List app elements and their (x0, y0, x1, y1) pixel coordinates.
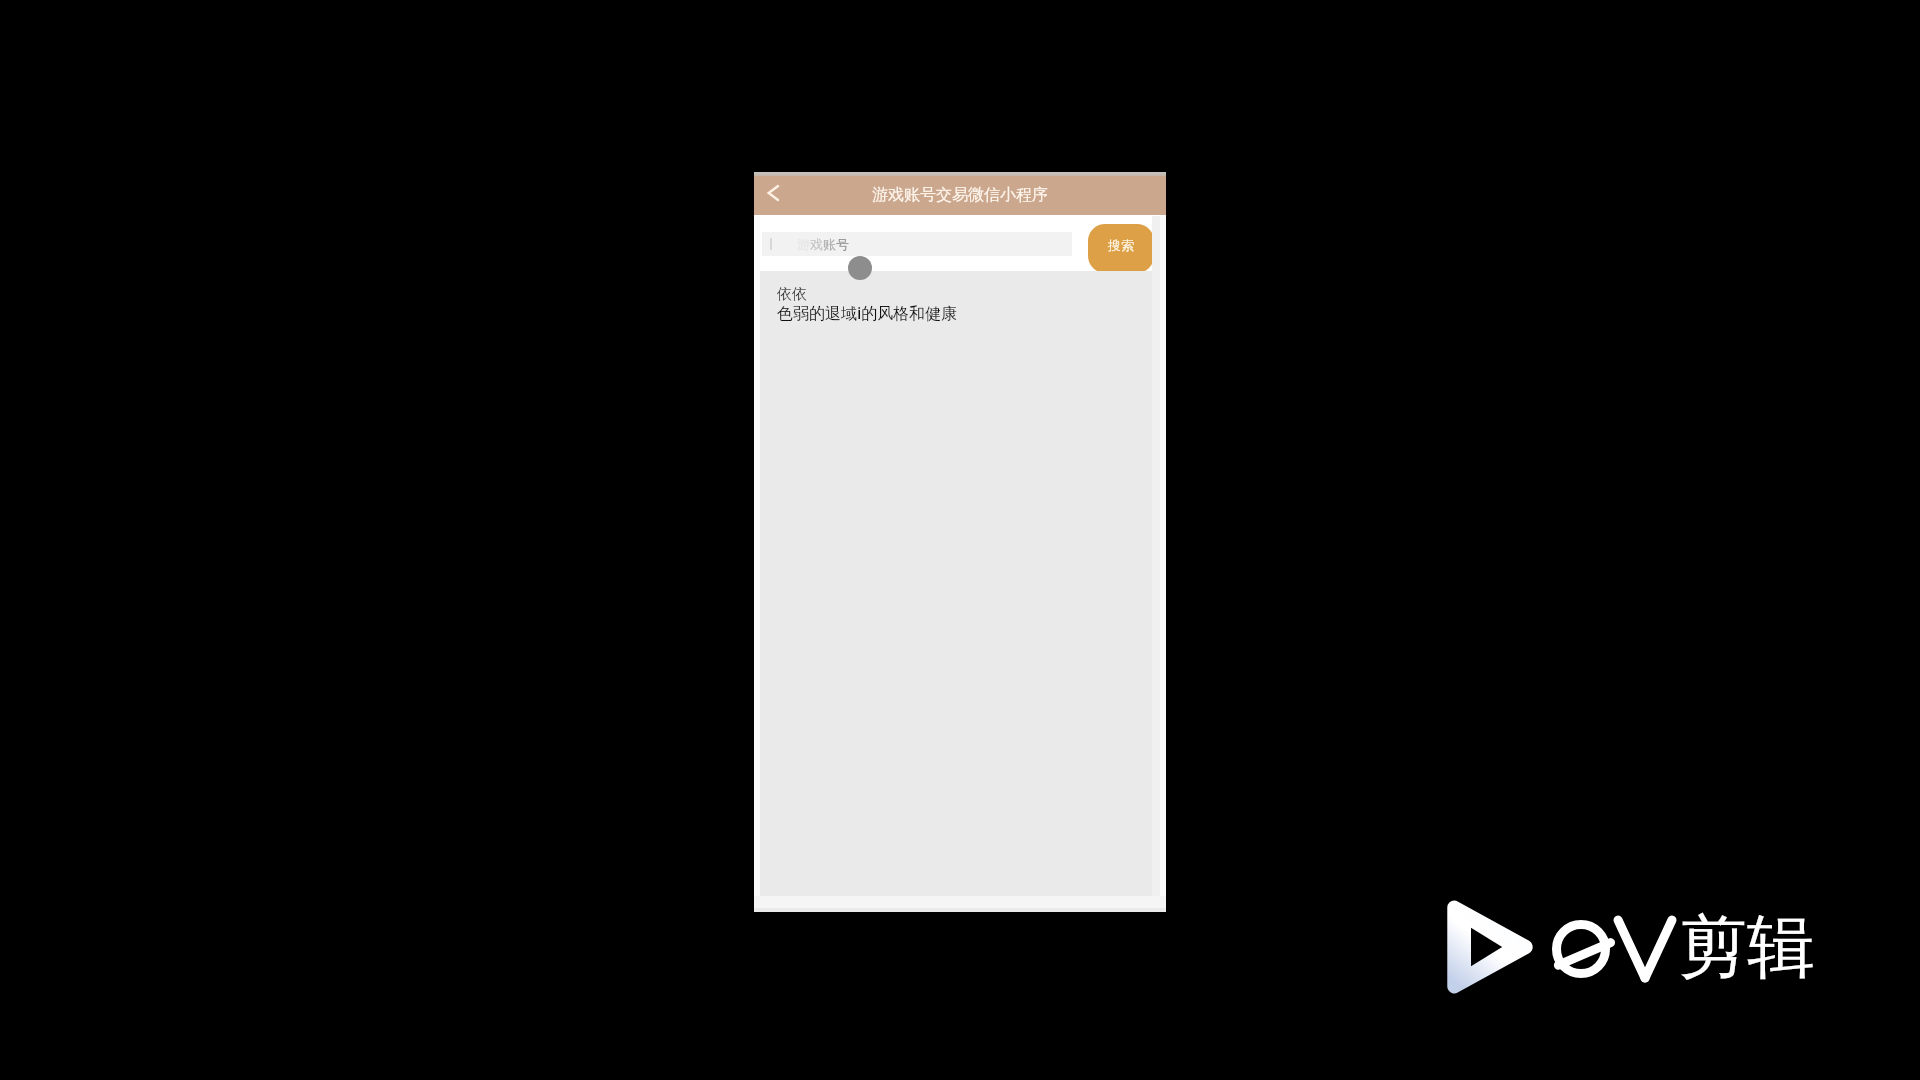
button[interactable]: 搜索 (1088, 224, 1154, 273)
staticText: 游 (797, 236, 810, 252)
staticText: 戏 (810, 236, 823, 252)
staticText: 依依 (777, 285, 807, 304)
button[interactable]: 依依 (754, 271, 1166, 323)
staticText: 色弱的退域i的风格和健康 (777, 302, 958, 324)
button[interactable]: Back (758, 178, 788, 208)
staticText: 剪辑 (1679, 905, 1815, 991)
other: EV editor watermark (1452, 905, 1528, 989)
staticText: 搜索 (1108, 237, 1134, 253)
button[interactable]: 游 (762, 232, 1072, 256)
staticText: 账 (823, 236, 836, 252)
staticText: 号 (836, 236, 849, 252)
staticText: 游戏账号交易微信小程序 (872, 185, 1048, 205)
